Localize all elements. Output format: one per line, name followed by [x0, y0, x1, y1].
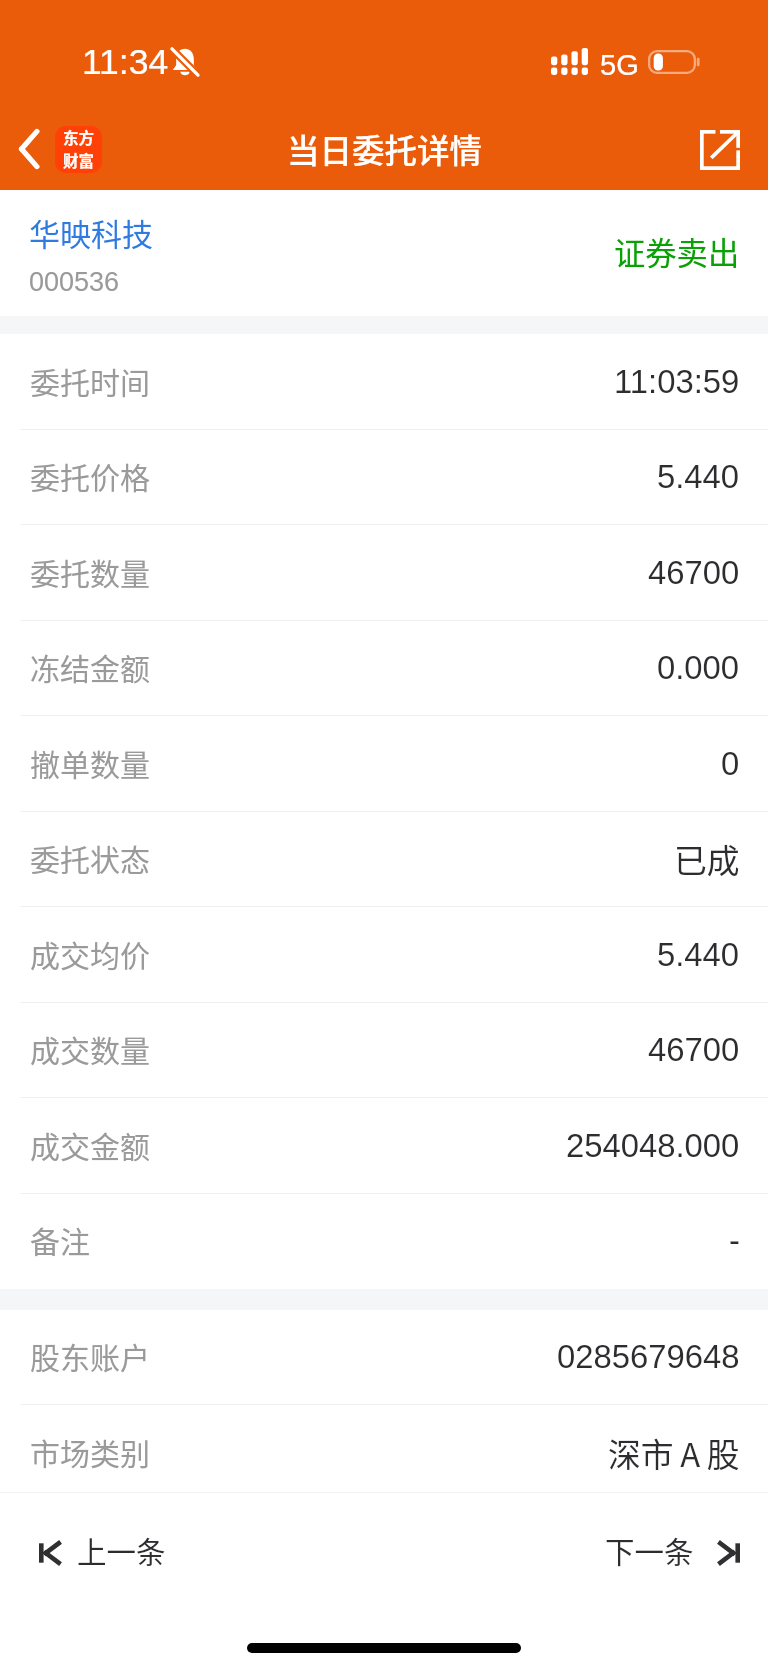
staticText: 冻结金额	[30, 645, 150, 688]
button[interactable]: 成交均价	[0, 907, 768, 1003]
staticText: 5.440	[657, 936, 740, 973]
staticText: 0	[721, 745, 740, 782]
button[interactable]: 委托价格	[0, 430, 768, 525]
button[interactable]: Share	[688, 118, 752, 182]
staticText: 5.440	[657, 458, 740, 495]
button[interactable]: 股东账户	[0, 1310, 768, 1405]
button[interactable]: 成交数量	[0, 1003, 768, 1098]
staticText: 华映科技	[29, 210, 153, 255]
staticText: 成交金额	[30, 1123, 150, 1166]
staticText: 11:03:59	[614, 363, 740, 400]
staticText: 市场类别	[30, 1430, 150, 1473]
button[interactable]: 下一条	[589, 1512, 768, 1592]
staticText: 已成	[674, 835, 740, 882]
staticText: 0.000	[657, 649, 740, 686]
button[interactable]: 撤单数量	[0, 716, 768, 812]
staticText: 当日委托详情	[287, 125, 483, 172]
button[interactable]: Back	[6, 118, 52, 180]
staticText: 成交均价	[30, 932, 150, 975]
staticText: 委托价格	[30, 454, 150, 497]
staticText: 5G	[600, 49, 639, 81]
staticText: 下一条	[605, 1529, 694, 1572]
button[interactable]: 委托状态	[0, 812, 768, 907]
staticText: 财富	[63, 149, 95, 171]
button[interactable]: 上一条	[0, 1512, 182, 1592]
staticText: 撤单数量	[30, 741, 150, 784]
staticText: 委托状态	[30, 836, 150, 879]
staticText: 上一条	[77, 1529, 166, 1572]
staticText: 证券卖出	[614, 229, 740, 274]
staticText: 股东账户	[30, 1334, 150, 1377]
button[interactable]: 冻结金额	[0, 621, 768, 716]
button[interactable]: 成交金额	[0, 1098, 768, 1194]
staticText: 备注	[30, 1218, 90, 1261]
button[interactable]: 市场类别	[0, 1405, 768, 1501]
staticText: 46700	[648, 1031, 740, 1068]
button[interactable]: 委托时间	[0, 334, 768, 430]
button[interactable]: 东方财富	[55, 126, 102, 173]
button[interactable]: 委托数量	[0, 525, 768, 621]
staticText: 46700	[648, 554, 740, 591]
staticText: 000536	[29, 267, 120, 297]
staticText: 11:34	[82, 42, 169, 82]
staticText: -	[729, 1222, 740, 1259]
staticText: 0285679648	[557, 1338, 740, 1375]
staticText: 深市 A 股	[608, 1429, 740, 1476]
staticText: 委托数量	[30, 550, 150, 593]
staticText: 委托时间	[30, 359, 150, 402]
staticText: 成交数量	[30, 1027, 150, 1070]
button[interactable]: 备注	[0, 1194, 768, 1289]
staticText: 254048.000	[566, 1127, 740, 1164]
staticText: 东方	[63, 126, 95, 148]
